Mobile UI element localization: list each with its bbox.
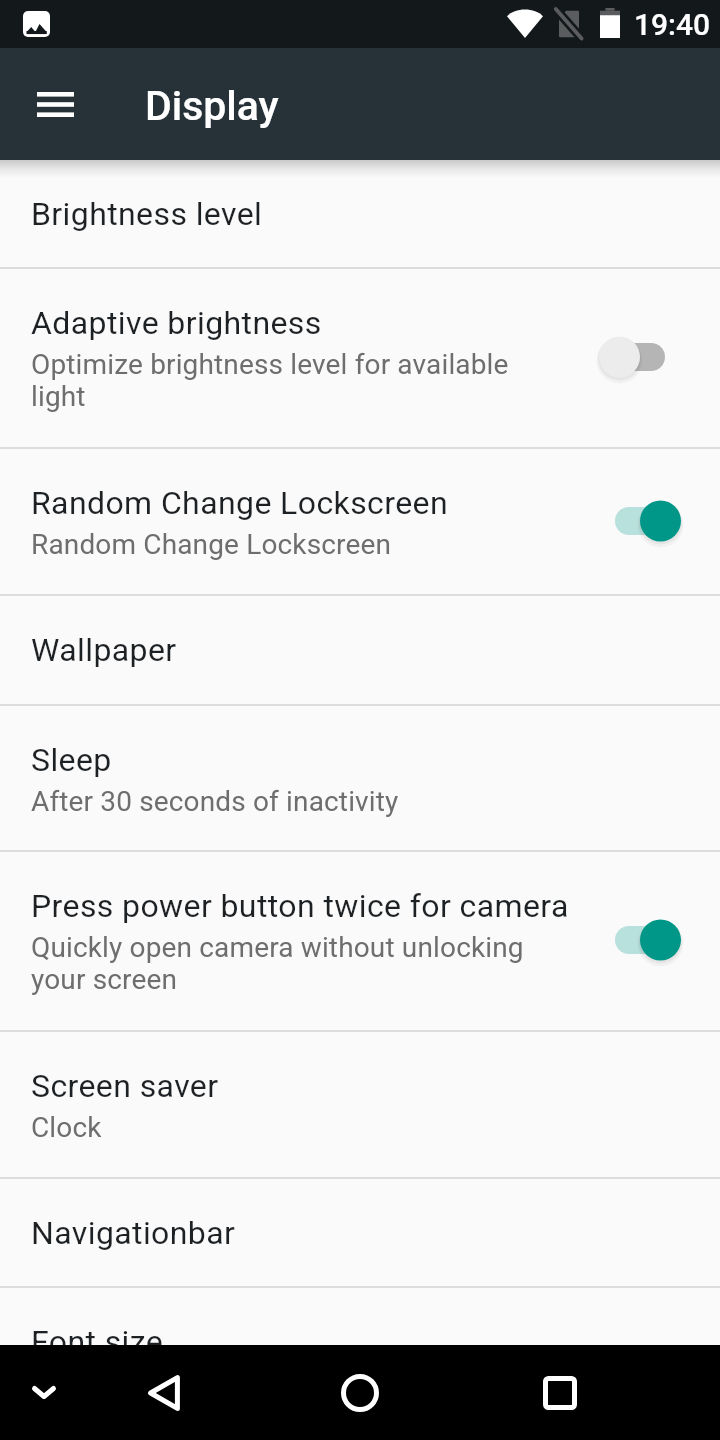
staticText: Screen saver [31,1067,591,1105]
button[interactable]: Random Change Lockscreen [0,449,720,596]
button[interactable]: Press power button twice for camera [0,852,720,1032]
staticText: Clock [31,1111,536,1144]
button[interactable]: Brightness level [0,160,720,269]
staticText: Wallpaper [31,631,591,669]
staticText: Optimize brightness level for available … [31,348,536,413]
button[interactable]: Navigationbar [0,1179,720,1288]
button[interactable]: Recent apps [524,1345,596,1440]
staticText: Font size [31,1323,591,1345]
staticText: Adaptive brightness [31,304,591,342]
staticText: Brightness level [31,195,591,233]
staticText: Random Change Lockscreen [31,484,591,522]
button[interactable]: Hide keyboard [8,1345,80,1440]
staticText: 19:40 [634,7,711,42]
button[interactable]: Wallpaper [0,596,720,706]
staticText: After 30 seconds of inactivity [31,785,536,818]
button[interactable]: Toggle off [599,334,681,380]
button[interactable]: Toggle on [599,498,681,544]
button[interactable]: Sleep [0,706,720,852]
staticText: Press power button twice for camera [31,887,591,925]
staticText: Random Change Lockscreen [31,528,536,561]
staticText: Sleep [31,741,591,779]
button[interactable]: Screen saver [0,1032,720,1179]
button[interactable]: Adaptive brightness [0,269,720,449]
button[interactable]: Toggle on [599,917,681,963]
staticText: Quickly open camera without unlocking yo… [31,931,536,996]
button[interactable]: Font size [0,1288,720,1345]
button[interactable]: Open navigation drawer [37,92,74,117]
staticText: Navigationbar [31,1214,591,1252]
button[interactable]: Back [128,1345,200,1440]
staticText: Display [145,82,279,130]
button[interactable]: Home [324,1345,396,1440]
